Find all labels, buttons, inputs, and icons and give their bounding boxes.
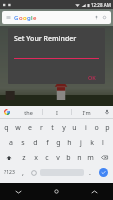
button[interactable]: f [41, 135, 53, 150]
staticText: s [21, 138, 25, 148]
button[interactable]: e [24, 120, 36, 135]
staticText: h [67, 138, 72, 148]
staticText: Set Your Reminder [14, 34, 77, 44]
button[interactable]: i [80, 120, 91, 135]
staticText: v [56, 153, 60, 163]
button[interactable]: r [36, 120, 47, 135]
button[interactable]: Backspace [96, 150, 113, 165]
button[interactable]: d [29, 135, 41, 150]
staticText: z [22, 153, 26, 163]
button[interactable]: p [102, 120, 113, 135]
button[interactable]: b [63, 150, 74, 165]
staticText: the [24, 109, 33, 116]
button[interactable]: Google [0, 106, 14, 118]
button[interactable]: I'm [72, 106, 100, 118]
staticText: c [45, 153, 49, 163]
button[interactable]: Back [0, 183, 37, 200]
staticText: , [22, 168, 24, 178]
button[interactable]: u [69, 120, 80, 135]
button[interactable]: Voice input [100, 106, 113, 118]
button[interactable]: k [86, 135, 97, 150]
staticText: a [9, 138, 13, 148]
staticText: p [105, 123, 110, 133]
button[interactable]: ?123 [1, 165, 18, 180]
staticText: o [94, 123, 99, 133]
staticText: b [66, 153, 71, 163]
staticText: q [4, 123, 9, 133]
button[interactable]: h [64, 135, 75, 150]
button[interactable]: t [47, 120, 58, 135]
button[interactable]: z [18, 150, 30, 165]
staticText: e [33, 14, 37, 22]
button[interactable]: s [17, 135, 29, 150]
staticText: x [34, 153, 38, 163]
button[interactable]: . [85, 165, 95, 180]
staticText: ?123 [4, 169, 15, 176]
staticText: m [87, 153, 94, 163]
staticText: l [31, 14, 33, 22]
staticText: o [23, 14, 27, 22]
staticText: k [90, 138, 94, 148]
staticText: e [28, 123, 32, 133]
button[interactable]: x [30, 150, 41, 165]
button[interactable]: c [41, 150, 52, 165]
staticText: l [102, 138, 104, 148]
staticText: . [89, 168, 91, 178]
staticText: g [56, 138, 61, 148]
button[interactable]: the [14, 106, 42, 118]
staticText: OK [88, 74, 96, 81]
button[interactable]: w [12, 120, 24, 135]
button[interactable]: j [75, 135, 86, 150]
button[interactable]: n [74, 150, 85, 165]
button[interactable]: o [91, 120, 102, 135]
staticText: I'm [82, 109, 91, 116]
staticText: I [56, 109, 58, 116]
button[interactable]: a [5, 135, 17, 150]
staticText: w [15, 123, 21, 133]
button[interactable]: v [52, 150, 63, 165]
staticText: f [46, 138, 49, 148]
button[interactable]: q [0, 120, 12, 135]
button[interactable]: OK [85, 73, 99, 82]
button[interactable]: , [18, 165, 28, 180]
button[interactable]: Home [37, 183, 75, 200]
staticText: g [27, 14, 31, 22]
button[interactable]: Shift [0, 150, 18, 165]
button[interactable]: G [2, 11, 111, 24]
button[interactable]: Recent apps [75, 183, 113, 200]
button[interactable]: Emoji [28, 165, 39, 180]
staticText: u [72, 123, 77, 133]
staticText: o [19, 14, 23, 22]
button[interactable]: y [58, 120, 69, 135]
staticText: d [33, 138, 38, 148]
staticText: j [80, 138, 82, 148]
button[interactable]: Enter [95, 165, 112, 180]
staticText: t [51, 123, 54, 133]
button[interactable]: g [53, 135, 64, 150]
button[interactable]: I [43, 106, 71, 118]
staticText: r [40, 123, 43, 133]
staticText: n [77, 153, 82, 163]
staticText: G [14, 14, 19, 22]
button[interactable]: l [97, 135, 108, 150]
staticText: i [85, 123, 87, 133]
staticText: y [62, 123, 66, 133]
button[interactable]: m [85, 150, 96, 165]
staticText: 12:28 AM [91, 2, 111, 8]
